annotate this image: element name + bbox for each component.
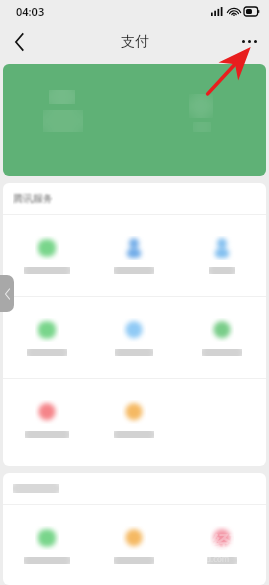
button[interactable]: 返回 <box>0 23 38 61</box>
button[interactable] <box>90 318 178 356</box>
staticText: 腾讯服务 <box>13 192 53 205</box>
button[interactable] <box>3 236 90 274</box>
staticText: Baidu 经验 <box>160 530 247 553</box>
button[interactable] <box>3 64 266 176</box>
button[interactable] <box>90 236 178 274</box>
button[interactable] <box>178 236 266 274</box>
button[interactable] <box>3 526 90 564</box>
button[interactable] <box>90 526 178 564</box>
button[interactable] <box>3 318 90 356</box>
button[interactable]: 更多 <box>229 22 269 61</box>
staticText: jingyan.baidu.com <box>160 553 230 564</box>
staticText: 支付 <box>121 33 149 51</box>
button[interactable] <box>3 400 90 438</box>
button[interactable] <box>90 400 178 438</box>
button[interactable]: 侧滑返回 <box>0 275 14 312</box>
button[interactable] <box>178 318 266 356</box>
staticText: 04:03 <box>16 4 45 19</box>
button[interactable] <box>178 526 266 564</box>
